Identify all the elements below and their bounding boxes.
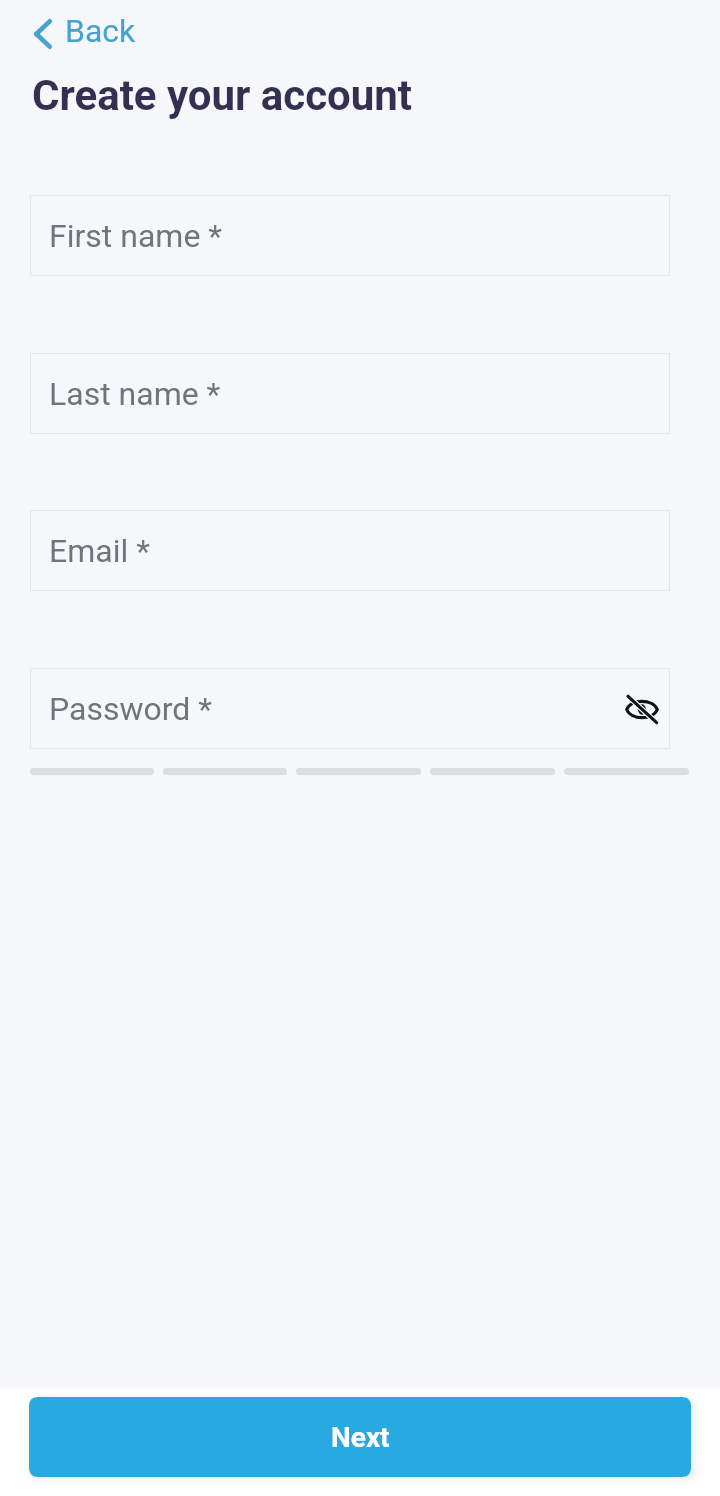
button[interactable]: Email *: [30, 510, 670, 591]
staticText: Next: [331, 1421, 390, 1454]
button[interactable]: Next: [29, 1397, 691, 1477]
button[interactable]: Last name *: [30, 353, 670, 434]
button[interactable]: First name *: [30, 195, 670, 276]
button[interactable]: Back: [22, 11, 150, 57]
button[interactable]: Show password: [615, 682, 669, 736]
staticText: First name *: [49, 217, 223, 255]
staticText: Password *: [49, 690, 213, 728]
staticText: Back: [65, 12, 136, 50]
button[interactable]: Password *: [30, 668, 670, 749]
staticText: Email *: [49, 532, 150, 570]
staticText: Create your account: [32, 71, 413, 120]
staticText: Last name *: [49, 375, 221, 413]
